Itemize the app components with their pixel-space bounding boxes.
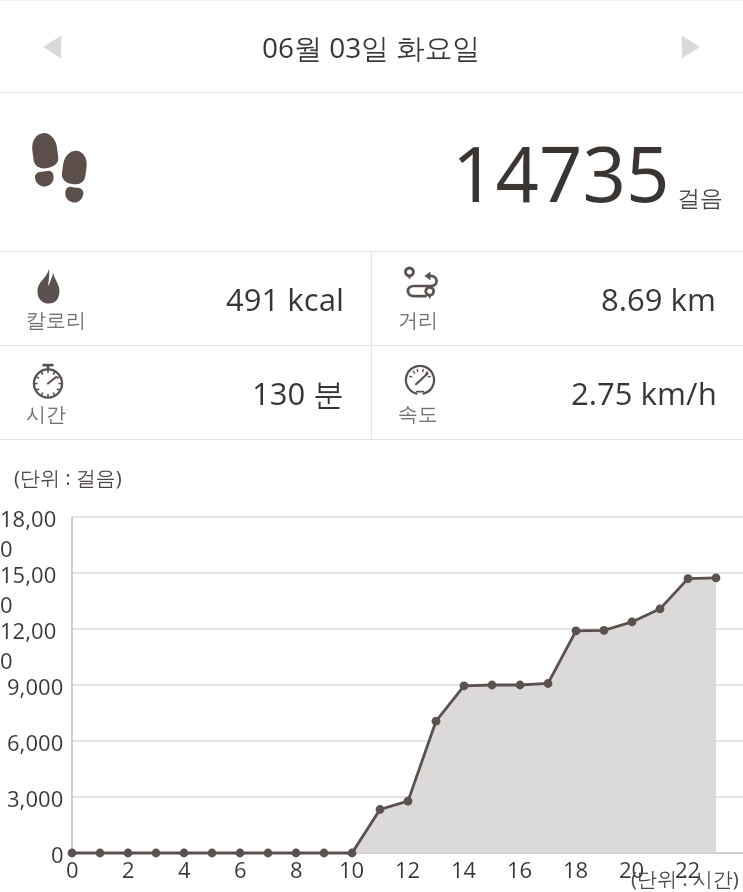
staticText: 시간 [26, 402, 66, 427]
staticText: 15,000 [0, 559, 64, 619]
staticText: 걸음 [677, 184, 723, 213]
staticText: 거리 [398, 308, 438, 333]
other: Distance [398, 264, 442, 308]
staticText: 3,000 [7, 783, 64, 813]
staticText: 9,000 [7, 671, 64, 701]
staticText: 2.75 km/h [571, 372, 717, 414]
button[interactable]: Time [0, 346, 371, 439]
button[interactable]: Speed [372, 346, 743, 439]
staticText: 06월 03일 화요일 [262, 28, 481, 66]
staticText: 14 [451, 854, 477, 884]
staticText: 18,000 [0, 503, 64, 563]
staticText: 10 [339, 854, 365, 884]
button[interactable]: Next day [657, 15, 721, 79]
button[interactable]: Calories [0, 252, 371, 345]
other: Speed [398, 358, 442, 402]
staticText: 8.69 km [601, 278, 717, 320]
button[interactable]: Steps [0, 93, 743, 252]
staticText: 속도 [398, 402, 438, 427]
staticText: 20 [619, 854, 645, 884]
staticText: 0 [51, 839, 64, 869]
staticText: 0 [66, 854, 79, 884]
other: Steps [30, 133, 92, 213]
staticText: 14735 [452, 121, 670, 225]
staticText: 491 kcal [226, 278, 345, 320]
staticText: 칼로리 [26, 308, 86, 333]
staticText: 4 [178, 854, 191, 884]
staticText: 8 [290, 854, 303, 884]
staticText: 130 분 [252, 372, 345, 414]
staticText: 22 [675, 854, 701, 884]
staticText: (단위 : 걸음) [14, 464, 122, 491]
staticText: 18 [563, 854, 589, 884]
staticText: 6,000 [7, 727, 64, 757]
button[interactable]: Previous day [22, 15, 86, 79]
other: Calories [26, 264, 70, 308]
staticText: 2 [122, 854, 135, 884]
staticText: 16 [507, 854, 533, 884]
staticText: 12,000 [0, 615, 64, 675]
staticText: 6 [234, 854, 247, 884]
staticText: (단위 : 시간) [631, 865, 739, 892]
other: Time [26, 358, 70, 402]
staticText: 12 [395, 854, 421, 884]
button[interactable]: Distance [372, 252, 743, 345]
